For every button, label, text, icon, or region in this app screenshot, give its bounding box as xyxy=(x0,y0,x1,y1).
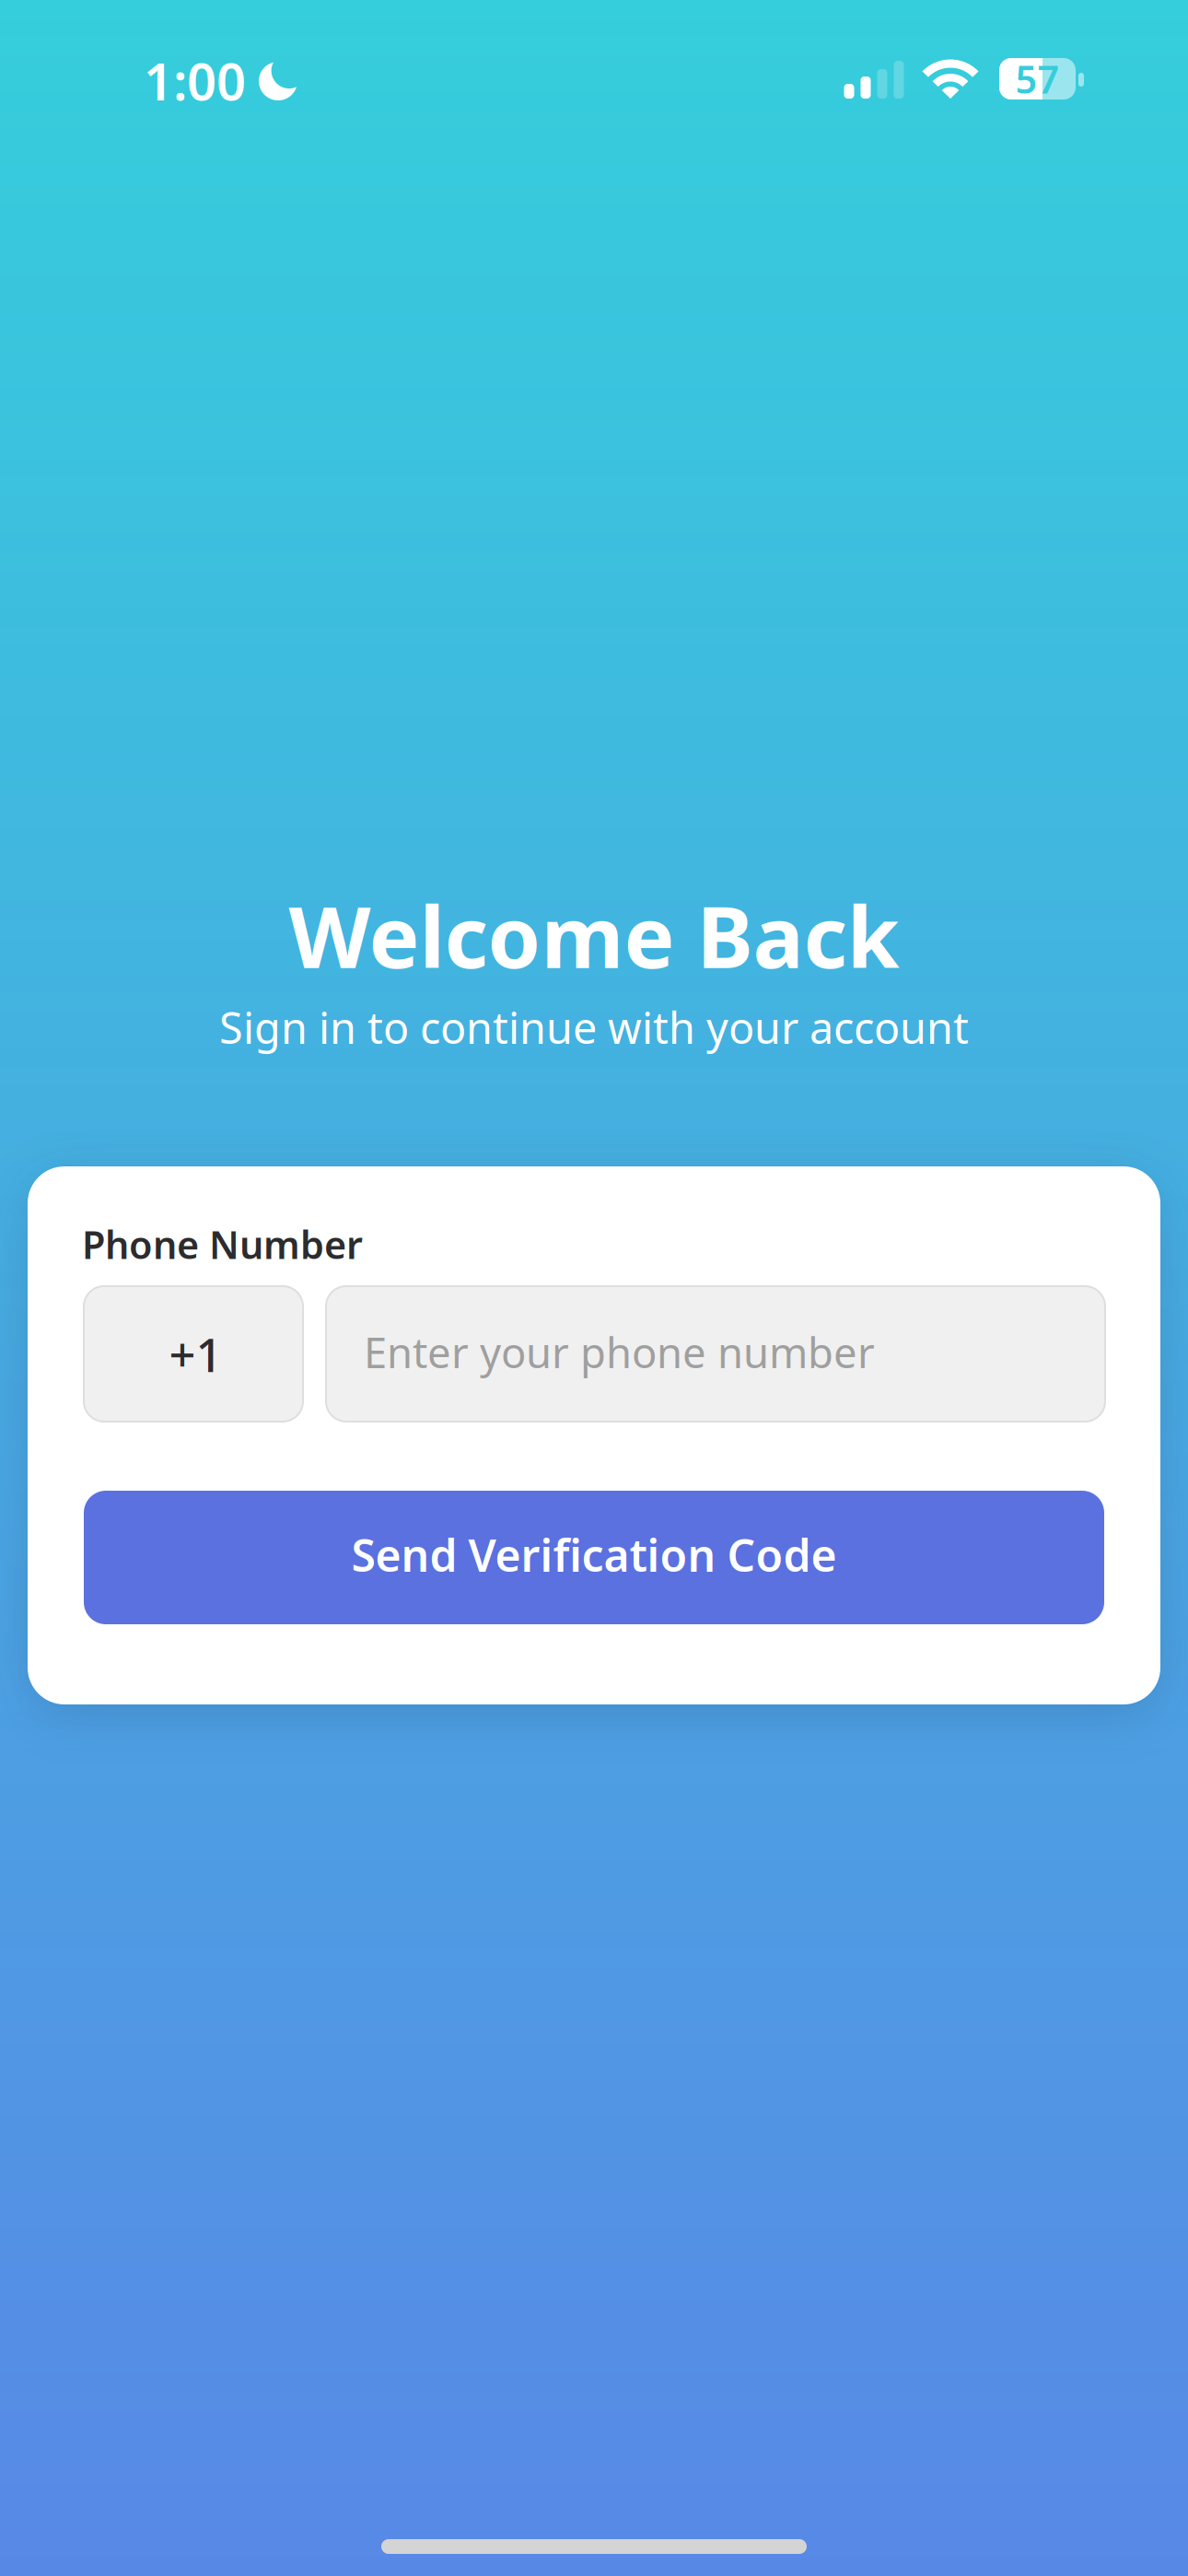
button[interactable]: +1 xyxy=(84,1286,303,1422)
staticText: Phone Number xyxy=(82,1219,363,1269)
staticText: Send Verification Code xyxy=(351,1525,837,1584)
staticText: Welcome Back xyxy=(289,879,899,992)
staticText: 57 xyxy=(1015,54,1060,104)
button[interactable]: Send Verification Code xyxy=(84,1491,1104,1624)
staticText: Sign in to continue with your account xyxy=(219,999,969,1056)
staticText: +1 xyxy=(169,1323,222,1385)
staticText: Enter your phone number xyxy=(364,1324,875,1380)
staticText: 1:00 xyxy=(144,46,246,115)
button[interactable]: Enter your phone number xyxy=(326,1286,1105,1422)
